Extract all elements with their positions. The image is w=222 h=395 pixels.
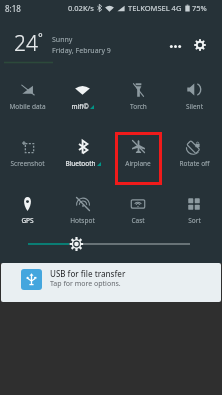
staticText: USB for file transfer <box>50 268 126 279</box>
button[interactable]: Mobile data <box>0 71 55 128</box>
button[interactable]: More options <box>163 34 187 58</box>
staticText: Torch <box>130 102 147 111</box>
staticText: ° <box>38 29 43 44</box>
button[interactable]: Cast <box>110 185 166 242</box>
staticText: mifi© <box>71 102 89 111</box>
staticText: 0.02K/s <box>68 3 94 13</box>
button[interactable]: Torch <box>110 71 166 128</box>
staticText: Bluetooth <box>65 159 96 168</box>
button[interactable]: USB for file transfer <box>1 263 221 302</box>
staticText: Screenshot <box>10 159 45 168</box>
button[interactable]: Silent <box>166 71 222 128</box>
staticText: Rotate off <box>179 159 210 168</box>
staticText: GPS <box>21 216 34 225</box>
staticText: Sort <box>188 216 201 225</box>
button[interactable]: Sort <box>166 185 222 242</box>
button[interactable]: mifi© <box>55 71 110 128</box>
staticText: Friday, February 9 <box>52 46 111 56</box>
staticText: Hotspot <box>70 216 95 225</box>
staticText: Mobile data <box>9 102 46 111</box>
button[interactable]: GPS <box>0 185 55 242</box>
button[interactable]: Airplane <box>110 128 166 185</box>
staticText: TELKOMSEL 4G <box>128 3 182 13</box>
button[interactable]: Settings <box>188 33 212 57</box>
staticText: Tap for more options. <box>50 279 121 289</box>
staticText: 24 <box>14 29 38 58</box>
button[interactable]: Bluetooth <box>55 128 110 185</box>
staticText: Sunny <box>52 35 73 45</box>
staticText: 75% <box>192 3 207 13</box>
staticText: Cast <box>131 216 145 225</box>
staticText: Silent <box>186 102 203 111</box>
button[interactable]: Hotspot <box>55 185 110 242</box>
staticText: Airplane <box>125 159 151 168</box>
button[interactable]: Screenshot <box>0 128 55 185</box>
staticText: 8:18 <box>5 3 21 14</box>
button[interactable]: Rotate off <box>166 128 222 185</box>
